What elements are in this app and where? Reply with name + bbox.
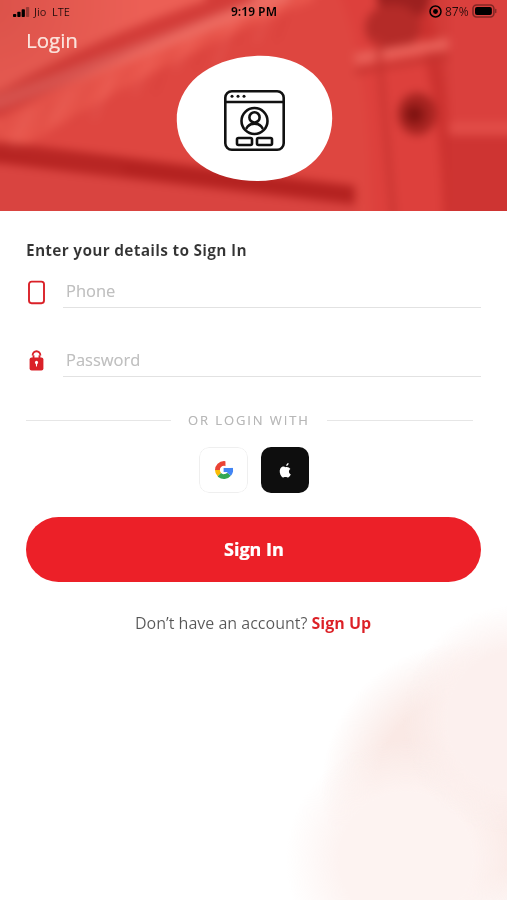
- staticText: 87%: [445, 3, 469, 19]
- staticText: Enter your details to Sign In: [26, 239, 247, 260]
- button[interactable]: Sign in with Google: [199, 447, 248, 493]
- button[interactable]: Don’t have an account? Sign Up: [135, 612, 372, 634]
- staticText: Sign In: [224, 537, 284, 562]
- staticText: Password: [66, 348, 141, 370]
- staticText: Jio LTE: [34, 4, 70, 19]
- button[interactable]: Phone: [0, 279, 507, 308]
- staticText: 9:19 PM: [231, 3, 277, 19]
- staticText: OR LOGIN WITH: [188, 411, 310, 429]
- staticText: Don’t have an account? Sign Up: [135, 612, 372, 634]
- staticText: Phone: [66, 279, 116, 301]
- button[interactable]: Sign in with Apple: [261, 447, 309, 493]
- staticText: Login: [26, 26, 78, 54]
- button[interactable]: Password: [0, 348, 507, 377]
- button[interactable]: Sign In: [26, 517, 481, 582]
